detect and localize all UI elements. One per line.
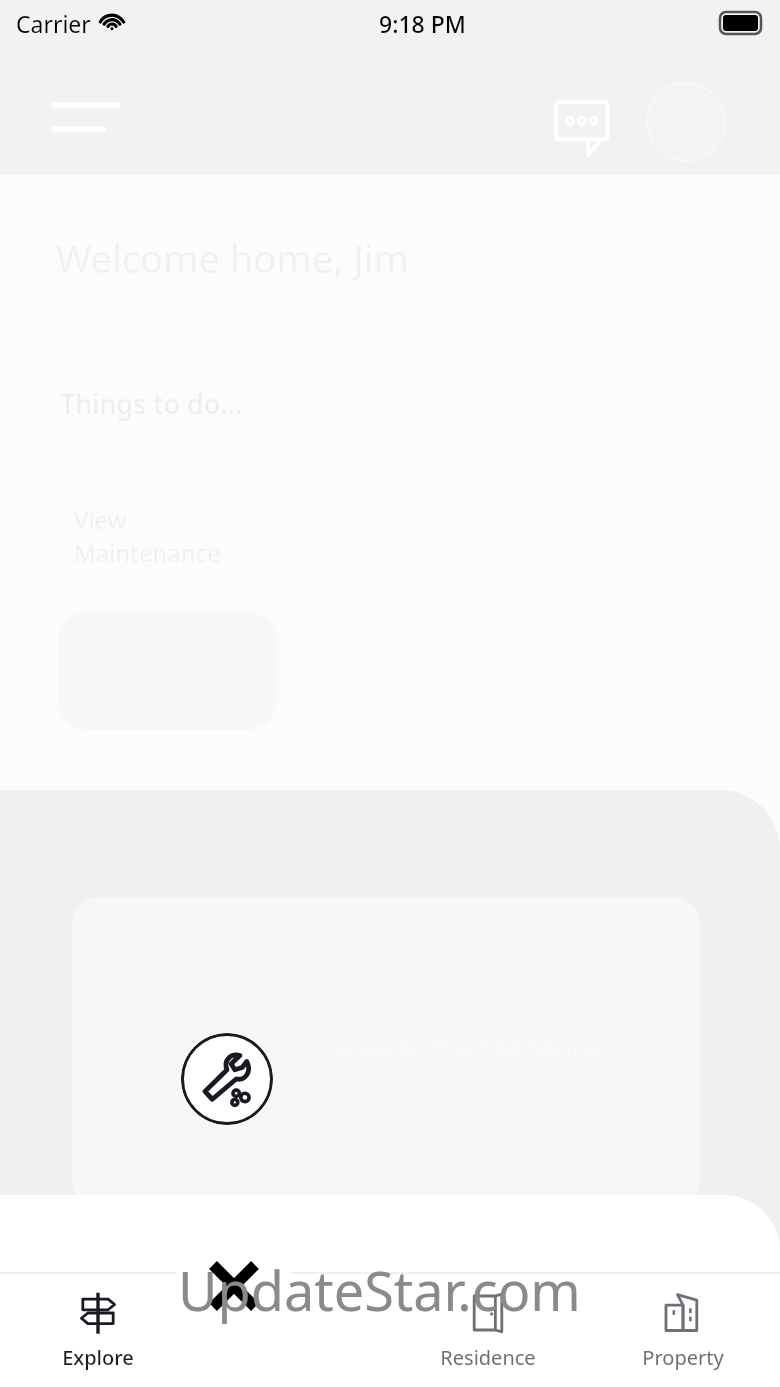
button[interactable]: Request maintenance xyxy=(181,1033,273,1125)
staticText: UpdateStar.com xyxy=(178,1253,581,1327)
staticText: View xyxy=(74,503,127,536)
staticText: Carrier xyxy=(16,8,91,39)
staticText: Residence xyxy=(440,1344,536,1371)
button[interactable]: Explore xyxy=(0,1273,195,1387)
button[interactable]: Menu xyxy=(48,95,118,141)
button[interactable]: Request maintenance xyxy=(72,897,700,1207)
button[interactable]: Messages xyxy=(553,92,617,156)
staticText: Explore xyxy=(62,1344,134,1371)
staticText: Property xyxy=(642,1344,724,1371)
button[interactable]: Residence xyxy=(390,1273,585,1387)
staticText: Maintenance xyxy=(74,536,221,569)
staticText: 9:18 PM xyxy=(379,8,466,39)
button[interactable]: Close xyxy=(175,1227,292,1344)
staticText: Things to do... xyxy=(60,385,243,422)
staticText: Welcome home, Jim xyxy=(56,232,410,284)
button[interactable]: Property xyxy=(585,1273,780,1387)
